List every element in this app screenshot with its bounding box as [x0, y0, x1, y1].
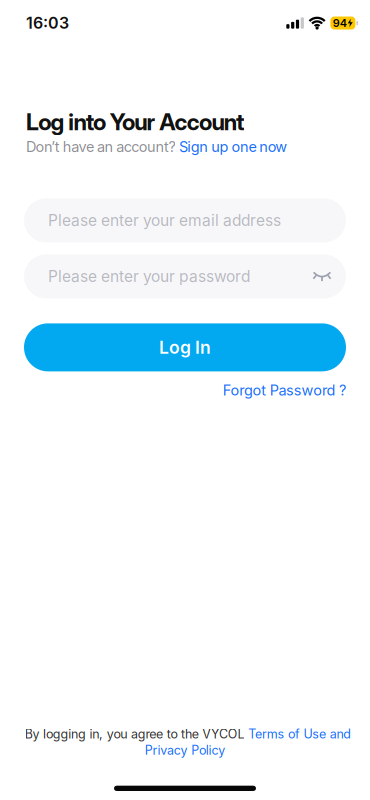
staticText: Terms of Use and: [248, 726, 351, 742]
staticText: Please enter your email address: [48, 211, 281, 230]
staticText: Log into Your Account: [26, 108, 244, 136]
staticText: Sign up one now: [179, 138, 287, 155]
staticText: 94: [333, 16, 347, 30]
button[interactable]: Forgot Password ?: [223, 381, 346, 399]
button[interactable]: Please enter your email address: [24, 198, 346, 242]
staticText: Don’t have an account?: [26, 138, 179, 155]
staticText: Forgot Password ?: [223, 381, 346, 399]
button[interactable]: Privacy Policy: [145, 743, 225, 758]
staticText: 16:03: [26, 13, 69, 33]
staticText: Please enter your password: [48, 267, 250, 286]
button[interactable]: Log In: [24, 323, 346, 371]
staticText: By logging in, you agree to the VYCOL: [25, 726, 248, 742]
button[interactable]: Terms of Use and: [248, 726, 351, 742]
button[interactable]: Sign up one now: [179, 138, 287, 155]
button[interactable]: Please enter your password: [24, 254, 346, 298]
button[interactable]: Show password: [313, 271, 331, 282]
staticText: Privacy Policy: [145, 743, 225, 758]
staticText: Log In: [159, 337, 211, 358]
